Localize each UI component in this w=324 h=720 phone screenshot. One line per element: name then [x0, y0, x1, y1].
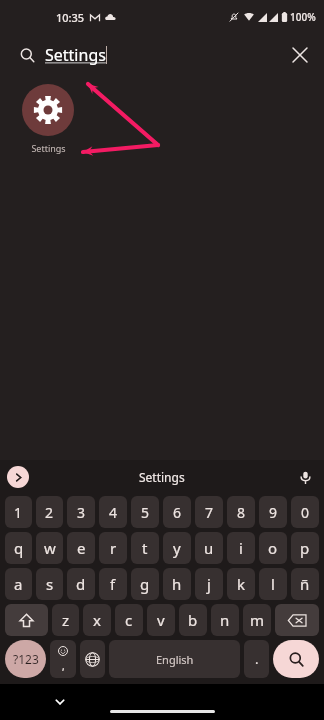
staticText: 2	[45, 503, 54, 522]
button[interactable]: x	[83, 604, 111, 636]
button[interactable]: Emoji and comma	[50, 640, 76, 678]
button[interactable]: 4	[99, 496, 127, 528]
staticText: w	[44, 538, 56, 558]
staticText: Settings	[45, 44, 106, 66]
button[interactable]: w	[36, 532, 63, 564]
button[interactable]: g	[131, 568, 159, 600]
button[interactable]: v	[147, 604, 175, 636]
button[interactable]: 9	[259, 496, 287, 528]
staticText: z	[62, 610, 70, 630]
staticText: 5	[141, 503, 150, 522]
staticText: 1	[14, 503, 23, 522]
button[interactable]: y	[163, 532, 191, 564]
button[interactable]: Settings	[0, 34, 324, 76]
staticText: x	[93, 610, 101, 630]
button[interactable]: t	[131, 532, 159, 564]
button[interactable]: Search	[273, 640, 319, 678]
button[interactable]: Hide keyboard	[48, 690, 72, 714]
staticText: .	[255, 650, 259, 668]
button[interactable]: e	[67, 532, 95, 564]
staticText: h	[172, 574, 182, 594]
button[interactable]: 0	[291, 496, 319, 528]
staticText: o	[268, 538, 278, 558]
button[interactable]: l	[259, 568, 287, 600]
button[interactable]: q	[5, 532, 32, 564]
button[interactable]: 2	[36, 496, 63, 528]
staticText: s	[46, 574, 54, 594]
button[interactable]: 1	[5, 496, 32, 528]
staticText: y	[173, 538, 181, 558]
staticText: g	[140, 574, 150, 594]
staticText: ñ	[300, 574, 310, 594]
staticText: Settings	[31, 142, 66, 154]
button[interactable]: Shift	[5, 604, 48, 636]
button[interactable]: n	[211, 604, 239, 636]
button[interactable]: m	[243, 604, 271, 636]
staticText: 4	[109, 503, 118, 522]
staticText: m	[250, 610, 265, 630]
staticText: b	[188, 610, 198, 630]
button[interactable]: d	[67, 568, 95, 600]
button[interactable]: o	[259, 532, 287, 564]
staticText: r	[110, 538, 117, 558]
button[interactable]: i	[227, 532, 255, 564]
staticText: q	[14, 538, 24, 558]
button[interactable]: 8	[227, 496, 255, 528]
button[interactable]: u	[195, 532, 223, 564]
button[interactable]: c	[115, 604, 143, 636]
button[interactable]: r	[99, 532, 127, 564]
staticText: a	[14, 574, 23, 594]
button[interactable]: ?123	[5, 640, 46, 678]
staticText: k	[237, 574, 246, 594]
staticText: c	[125, 610, 133, 630]
button[interactable]: English	[109, 640, 240, 678]
button[interactable]: p	[291, 532, 319, 564]
staticText: 6	[173, 503, 182, 522]
staticText: p	[300, 538, 310, 558]
button[interactable]: Change language	[80, 640, 105, 678]
button[interactable]: s	[36, 568, 63, 600]
button[interactable]: a	[5, 568, 32, 600]
button[interactable]: 5	[131, 496, 159, 528]
button[interactable]: Voice input	[294, 466, 316, 488]
staticText: English	[156, 652, 194, 667]
button[interactable]: f	[99, 568, 127, 600]
staticText: 7	[205, 503, 214, 522]
button[interactable]: 7	[195, 496, 223, 528]
staticText: ?123	[13, 651, 39, 667]
staticText: e	[77, 538, 86, 558]
button[interactable]: j	[195, 568, 223, 600]
staticText: ,	[62, 659, 65, 673]
staticText: t	[142, 538, 148, 558]
button[interactable]: Clear search	[280, 35, 320, 75]
button[interactable]: b	[179, 604, 207, 636]
staticText: u	[204, 538, 214, 558]
button[interactable]: k	[227, 568, 255, 600]
staticText: 10:35	[56, 10, 85, 25]
staticText: d	[76, 574, 86, 594]
staticText: 8	[237, 503, 246, 522]
button[interactable]: z	[52, 604, 79, 636]
staticText: v	[157, 610, 165, 630]
staticText: 100%	[290, 10, 316, 24]
button[interactable]: Settings	[139, 469, 185, 485]
staticText: i	[239, 538, 243, 558]
button[interactable]: More suggestions	[7, 466, 29, 488]
staticText: 0	[301, 503, 310, 522]
staticText: 3	[77, 503, 86, 522]
button[interactable]: 6	[163, 496, 191, 528]
staticText: f	[110, 574, 116, 594]
staticText: n	[220, 610, 230, 630]
button[interactable]: Backspace	[275, 604, 319, 636]
staticText: l	[271, 574, 275, 594]
button[interactable]: .	[244, 640, 269, 678]
button[interactable]: 3	[67, 496, 95, 528]
button[interactable]: h	[163, 568, 191, 600]
staticText: j	[207, 574, 211, 594]
button[interactable]: Settings	[22, 84, 74, 154]
staticText: 9	[269, 503, 278, 522]
button[interactable]: ñ	[291, 568, 319, 600]
